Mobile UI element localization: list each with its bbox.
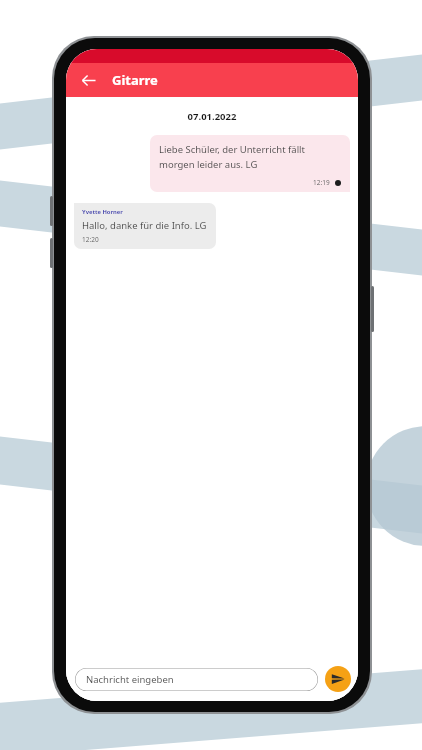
button[interactable]: Back <box>73 65 103 95</box>
staticText: Nachricht eingeben <box>86 673 174 686</box>
button[interactable]: Nachricht eingeben <box>75 668 318 691</box>
staticText: 12:20 <box>82 235 99 244</box>
staticText: Yvette Horner <box>82 208 123 216</box>
button[interactable]: Yvette Horner <box>74 203 216 249</box>
button[interactable]: Liebe Schüler, der Unterricht fällt morg… <box>150 135 350 192</box>
staticText: Liebe Schüler, der Unterricht fällt morg… <box>159 143 341 171</box>
staticText: Gitarre <box>112 71 158 89</box>
staticText: 07.01.2022 <box>66 110 358 123</box>
button[interactable]: Send <box>325 666 351 692</box>
staticText: Hallo, danke für die Info. LG <box>82 219 207 232</box>
staticText: 12:19 <box>313 178 330 187</box>
